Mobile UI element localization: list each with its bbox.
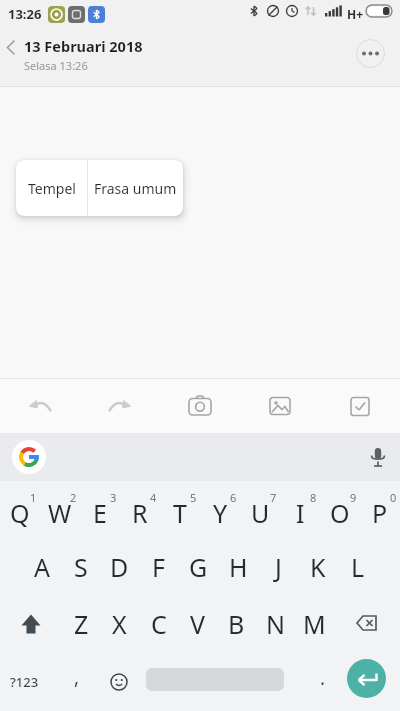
button[interactable]: P bbox=[360, 481, 400, 538]
button[interactable]: Frasa umum bbox=[88, 160, 183, 216]
button[interactable]: W bbox=[40, 481, 80, 538]
staticText: 7 bbox=[270, 490, 277, 505]
staticText: . bbox=[320, 665, 326, 691]
staticText: Selasa 13:26 bbox=[24, 58, 88, 73]
staticText: Tempel bbox=[28, 179, 76, 198]
button[interactable]: G bbox=[178, 538, 218, 595]
staticText: C bbox=[151, 607, 167, 641]
staticText: T bbox=[173, 496, 187, 530]
button[interactable] bbox=[347, 659, 386, 698]
staticText: R bbox=[132, 496, 148, 530]
staticText: E bbox=[93, 496, 107, 530]
staticText: 9 bbox=[350, 490, 357, 505]
button[interactable] bbox=[320, 379, 400, 433]
button[interactable]: F bbox=[139, 538, 178, 595]
staticText: D bbox=[110, 550, 129, 584]
button[interactable] bbox=[0, 379, 80, 433]
button[interactable]: T bbox=[160, 481, 200, 538]
button[interactable]: N bbox=[256, 595, 295, 652]
staticText: 8 bbox=[310, 490, 317, 505]
button[interactable] bbox=[0, 595, 62, 652]
staticText: S bbox=[74, 550, 88, 584]
staticText: J bbox=[275, 550, 282, 584]
button[interactable] bbox=[356, 39, 385, 68]
button[interactable]: Q bbox=[0, 481, 40, 538]
button[interactable]: J bbox=[258, 538, 298, 595]
button[interactable]: ?123 bbox=[10, 673, 39, 691]
button[interactable]: C bbox=[139, 595, 178, 652]
button[interactable]: E bbox=[80, 481, 120, 538]
staticText: L bbox=[351, 550, 365, 584]
button[interactable]: Tempel bbox=[16, 160, 87, 216]
staticText: Frasa umum bbox=[94, 179, 177, 198]
staticText: Z bbox=[74, 607, 89, 641]
staticText: M bbox=[303, 607, 326, 641]
staticText: F bbox=[152, 550, 165, 584]
staticText: 5 bbox=[190, 490, 197, 505]
staticText: 13:26 bbox=[8, 5, 42, 23]
button[interactable] bbox=[160, 379, 240, 433]
staticText: Y bbox=[213, 496, 228, 530]
button[interactable]: A bbox=[22, 538, 61, 595]
staticText: N bbox=[266, 607, 286, 641]
staticText: G bbox=[189, 550, 208, 584]
button[interactable]: K bbox=[298, 538, 338, 595]
button[interactable]: R bbox=[120, 481, 160, 538]
staticText: I bbox=[296, 496, 305, 530]
button[interactable]: D bbox=[100, 538, 139, 595]
button[interactable]: Z bbox=[62, 595, 100, 652]
staticText: Q bbox=[10, 496, 30, 530]
button[interactable]: , bbox=[74, 664, 80, 690]
button[interactable] bbox=[12, 440, 46, 474]
button[interactable]: M bbox=[295, 595, 334, 652]
staticText: 0 bbox=[390, 490, 397, 505]
button[interactable]: U bbox=[240, 481, 280, 538]
button[interactable]: . bbox=[320, 665, 326, 691]
staticText: A bbox=[34, 550, 50, 584]
button[interactable]: I bbox=[280, 481, 320, 538]
button[interactable]: Y bbox=[200, 481, 240, 538]
staticText: K bbox=[310, 550, 326, 584]
staticText: P bbox=[372, 496, 388, 530]
button[interactable] bbox=[367, 446, 389, 468]
staticText: ?123 bbox=[10, 673, 39, 691]
staticText: O bbox=[330, 496, 350, 530]
staticText: 3 bbox=[110, 490, 117, 505]
button[interactable] bbox=[240, 379, 320, 433]
staticText: 2 bbox=[70, 490, 77, 505]
staticText: 13 Februari 2018 bbox=[24, 36, 143, 56]
button[interactable]: O bbox=[320, 481, 360, 538]
staticText: W bbox=[48, 496, 72, 530]
staticText: , bbox=[74, 664, 80, 690]
button[interactable] bbox=[80, 379, 160, 433]
staticText: 6 bbox=[230, 490, 237, 505]
button[interactable]: H bbox=[218, 538, 258, 595]
staticText: H bbox=[229, 550, 248, 584]
staticText: U bbox=[251, 496, 270, 530]
staticText: H+ bbox=[347, 6, 364, 22]
staticText: X bbox=[112, 607, 127, 641]
staticText: V bbox=[190, 607, 206, 641]
staticText: B bbox=[228, 607, 245, 641]
button[interactable]: X bbox=[100, 595, 139, 652]
button[interactable] bbox=[108, 671, 130, 693]
button[interactable]: V bbox=[178, 595, 217, 652]
button[interactable] bbox=[334, 595, 400, 652]
staticText: 1 bbox=[30, 490, 37, 505]
staticText: 4 bbox=[150, 490, 157, 505]
button[interactable]: B bbox=[217, 595, 256, 652]
button[interactable]: L bbox=[338, 538, 378, 595]
button[interactable]: S bbox=[61, 538, 100, 595]
